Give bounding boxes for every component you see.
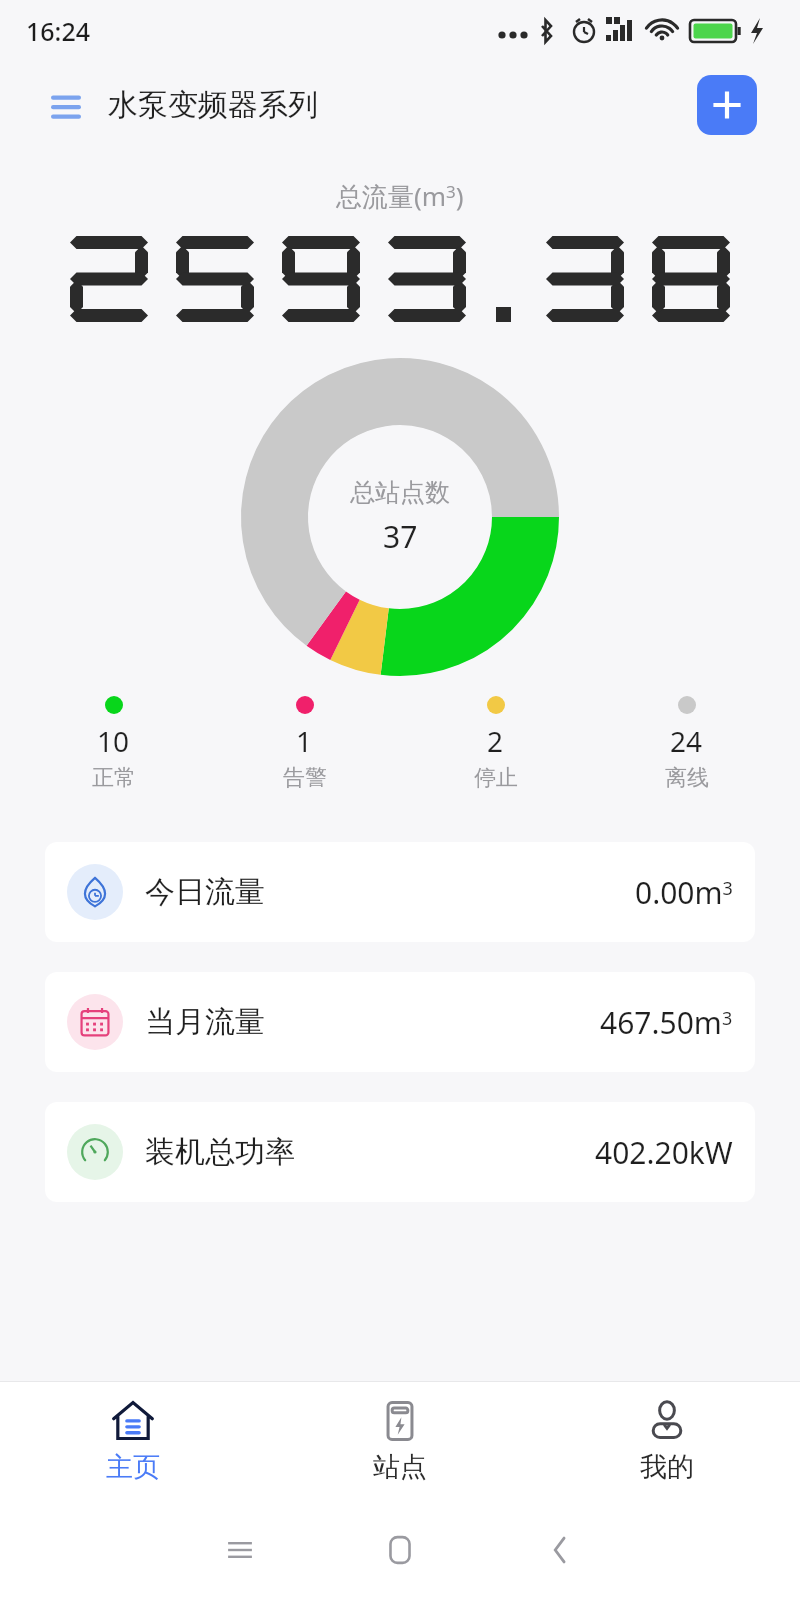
button[interactable]: 当月流量	[45, 972, 755, 1072]
button[interactable]: 10	[18, 696, 209, 792]
button[interactable]: Home	[320, 1520, 480, 1580]
staticText: 24	[670, 722, 703, 760]
button[interactable]: Menu	[46, 85, 86, 125]
staticText: 总站点数	[350, 477, 450, 508]
staticText: 37	[383, 516, 418, 557]
staticText: 2	[487, 722, 504, 760]
staticText: 水泵变频器系列	[108, 86, 318, 124]
button[interactable]: 1	[209, 696, 400, 792]
button[interactable]: 主页	[0, 1382, 266, 1500]
staticText: 402.20kW	[595, 1132, 733, 1173]
staticText: 离线	[665, 764, 709, 792]
staticText: 装机总功率	[145, 1133, 295, 1171]
staticText: 我的	[640, 1450, 694, 1484]
staticText: 告警	[283, 764, 327, 792]
staticText: 467.50m3	[600, 1002, 733, 1043]
button[interactable]: 装机总功率	[45, 1102, 755, 1202]
button[interactable]: 2	[400, 696, 591, 792]
button[interactable]: Back	[480, 1520, 640, 1580]
button[interactable]: 今日流量	[45, 842, 755, 942]
staticText: 当月流量	[145, 1003, 265, 1041]
staticText: 主页	[106, 1450, 160, 1484]
button[interactable]: 24	[591, 696, 782, 792]
staticText: 16:24	[26, 14, 91, 48]
button[interactable]: 我的	[533, 1382, 800, 1500]
staticText: 正常	[92, 764, 136, 792]
staticText: 今日流量	[145, 873, 265, 911]
staticText: 1	[296, 722, 313, 760]
button[interactable]: 站点	[266, 1382, 533, 1500]
button[interactable]: Recents	[160, 1520, 320, 1580]
staticText: 总流量(m3)	[336, 178, 464, 214]
staticText: 停止	[474, 764, 518, 792]
button[interactable]: Add	[697, 75, 757, 135]
staticText: 站点	[373, 1450, 427, 1484]
staticText: 0.00m3	[635, 872, 733, 913]
staticText: 10	[97, 722, 130, 760]
